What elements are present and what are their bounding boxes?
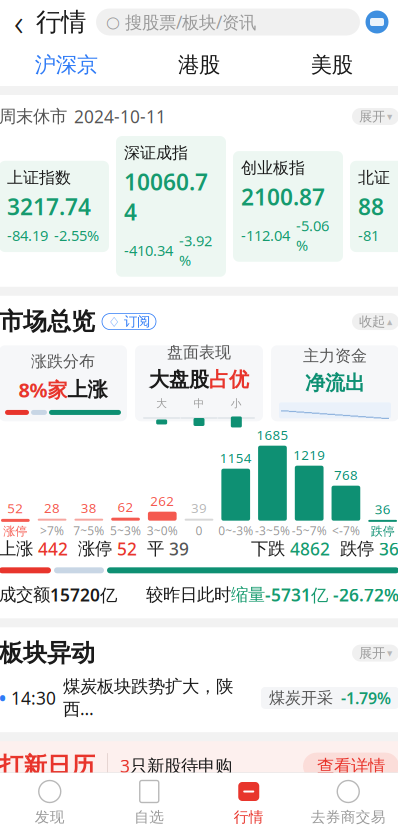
button[interactable]: 选股 [0, 813, 72, 835]
staticText: 深证成指 [124, 143, 188, 163]
staticText: 盘面表现 [167, 343, 231, 362]
staticText: 2024-10-11 [74, 105, 166, 128]
staticText: -81 [358, 226, 379, 245]
staticText: 大盘股 [149, 367, 209, 392]
button[interactable]: 自选 [99, 780, 199, 826]
staticText: -3.92% [179, 231, 212, 270]
staticText: 成交额 [0, 584, 50, 605]
staticText: 沪深京 [35, 52, 98, 78]
staticText: -410.34 [124, 241, 173, 260]
staticText: 62 [117, 498, 133, 516]
button[interactable]: 涨跌分布 [0, 345, 127, 421]
staticText: -26.72% [328, 583, 398, 606]
staticText: ▾ [387, 110, 392, 123]
staticText: 1154 [220, 449, 252, 467]
staticText: 3217.74 [7, 191, 91, 222]
staticText: 28 [44, 499, 60, 517]
staticText: 北证 [358, 168, 390, 187]
button[interactable]: 展开 [352, 108, 398, 125]
staticText: 涨停 [3, 524, 27, 539]
staticText: 占优 [209, 367, 249, 392]
staticText: 39 [191, 499, 207, 517]
staticText: 15720亿 [50, 583, 117, 606]
staticText: 主力资金 [303, 346, 367, 366]
button[interactable]: • [0, 668, 398, 732]
staticText: -3~5% [255, 523, 290, 539]
staticText: -5~7% [292, 523, 327, 539]
staticText: 净流出 [305, 371, 365, 395]
button[interactable]: 收起 [352, 313, 398, 330]
staticText: 小 [231, 397, 242, 410]
staticText: 煤炭板块跌势扩大，陕西… [63, 676, 233, 720]
button[interactable]: 美股 [265, 44, 398, 86]
staticText: ♢ 订阅 [108, 313, 150, 330]
staticText: -84.19 [7, 226, 48, 245]
staticText: ▴ [387, 315, 392, 328]
staticText: 缩量 [231, 584, 265, 605]
button[interactable]: 热门股票 [326, 813, 398, 835]
staticText: 煤炭开采 [269, 688, 333, 708]
button[interactable]: 打新日历 [0, 741, 398, 791]
button[interactable]: 去券商交易 [298, 780, 398, 826]
staticText: -5731亿 [265, 583, 328, 606]
staticText: 2100.87 [241, 182, 325, 212]
staticText: 上涨 [67, 377, 107, 402]
staticText: 1219 [293, 446, 325, 464]
button[interactable]: 发现 [0, 780, 99, 826]
button[interactable]: 盘面表现 [135, 345, 263, 421]
staticText: 发现 [35, 808, 65, 826]
staticText: 创业板指 [241, 158, 305, 178]
button[interactable]: 返回 [2, 2, 36, 42]
staticText: 上证指数 [7, 168, 71, 187]
button[interactable]: 深证成指 [116, 136, 226, 277]
staticText: 展开 [359, 108, 385, 125]
button[interactable]: 展开 [352, 645, 398, 662]
staticText: 4862 [290, 537, 330, 560]
staticText: 262 [150, 492, 174, 510]
staticText: 行情 [36, 6, 86, 37]
staticText: 周末休市 [0, 106, 67, 127]
staticText: 7~5% [73, 523, 104, 539]
staticText: • [0, 686, 6, 710]
staticText: 52 [7, 499, 23, 517]
staticText: 市场总览 [0, 307, 95, 336]
staticText: 跌停 [330, 538, 379, 559]
staticText: 中 [193, 397, 204, 410]
button[interactable]: 龙虎掘金 [72, 813, 157, 835]
staticText: 52 [117, 537, 137, 560]
staticText: 搜股票/板块/资讯 [125, 10, 256, 33]
staticText: 美股 [311, 52, 353, 78]
staticText: 行情 [234, 808, 264, 826]
button[interactable]: ¥ [241, 813, 326, 835]
staticText: 展开 [359, 645, 385, 661]
staticText: 36 [375, 500, 391, 518]
staticText: 0 [195, 523, 202, 539]
button[interactable]: 港股 [133, 44, 265, 86]
staticText: ‹ [14, 0, 24, 46]
button[interactable]: VIP资讯 [157, 812, 241, 835]
button[interactable]: 创业板指 [233, 151, 343, 262]
staticText: 14:30 [11, 686, 56, 709]
staticText: 0~-3% [218, 523, 253, 539]
staticText: 去券商交易 [311, 808, 386, 826]
staticText: -1.79% [341, 687, 391, 709]
staticText: 38 [81, 499, 97, 517]
staticText: 上涨 [0, 538, 38, 559]
staticText: 跌停 [371, 524, 395, 539]
staticText: 39 [169, 537, 189, 560]
staticText: 只新股待申购 [130, 755, 232, 777]
staticText: 1685 [256, 426, 288, 444]
button[interactable]: ♢ 订阅 [102, 314, 156, 330]
button[interactable]: 行情 [199, 780, 298, 826]
staticText: 涨停 [68, 538, 117, 559]
staticText: 大 [156, 397, 167, 410]
button[interactable]: 上证指数 [0, 161, 109, 252]
staticText: <-7% [332, 523, 360, 539]
button[interactable]: 沪深京 [0, 44, 133, 86]
button[interactable]: ○ [96, 8, 360, 35]
staticText: 442 [38, 537, 68, 560]
button[interactable]: 个人中心 [360, 2, 394, 42]
staticText: 板块异动 [0, 638, 95, 668]
button[interactable]: 主力资金 [271, 345, 398, 421]
